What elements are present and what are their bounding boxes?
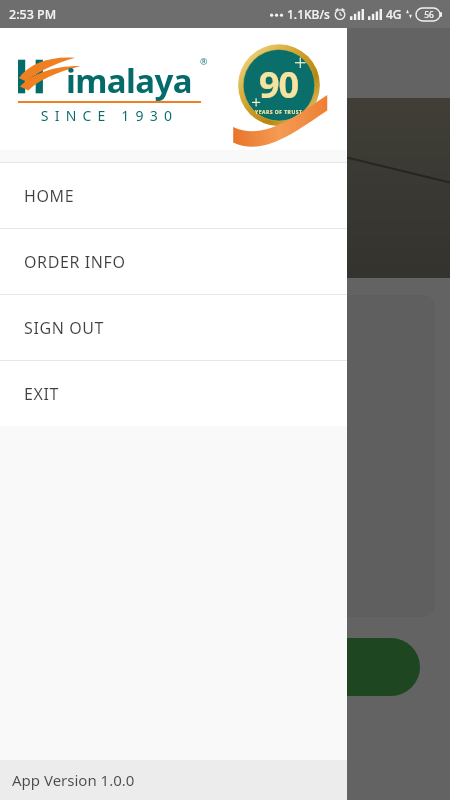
staticText: YEARS OF TRUST (255, 109, 303, 116)
staticText: 2:53 PM (9, 6, 57, 23)
button[interactable] (30, 638, 420, 696)
staticText: HOME (24, 185, 75, 207)
staticText: EXIT (24, 383, 59, 405)
staticText: 4G (386, 6, 402, 22)
button[interactable]: EXIT (0, 361, 347, 426)
staticText: ® (200, 55, 208, 67)
staticText: 1.1KB/s (287, 6, 330, 22)
button[interactable]: SIGN OUT (0, 295, 347, 360)
button[interactable]: ORDER INFO (0, 229, 347, 294)
staticText: imalaya (66, 58, 192, 103)
button[interactable] (15, 295, 435, 617)
staticText: SIGN OUT (24, 317, 105, 339)
staticText: App Version 1.0.0 (12, 770, 135, 790)
staticText: 56 (424, 9, 434, 21)
staticText: ORDER INFO (24, 251, 126, 273)
button[interactable]: HOME (0, 163, 347, 228)
staticText: SINCE 1930 (18, 106, 201, 125)
staticText: 90 (259, 60, 299, 109)
